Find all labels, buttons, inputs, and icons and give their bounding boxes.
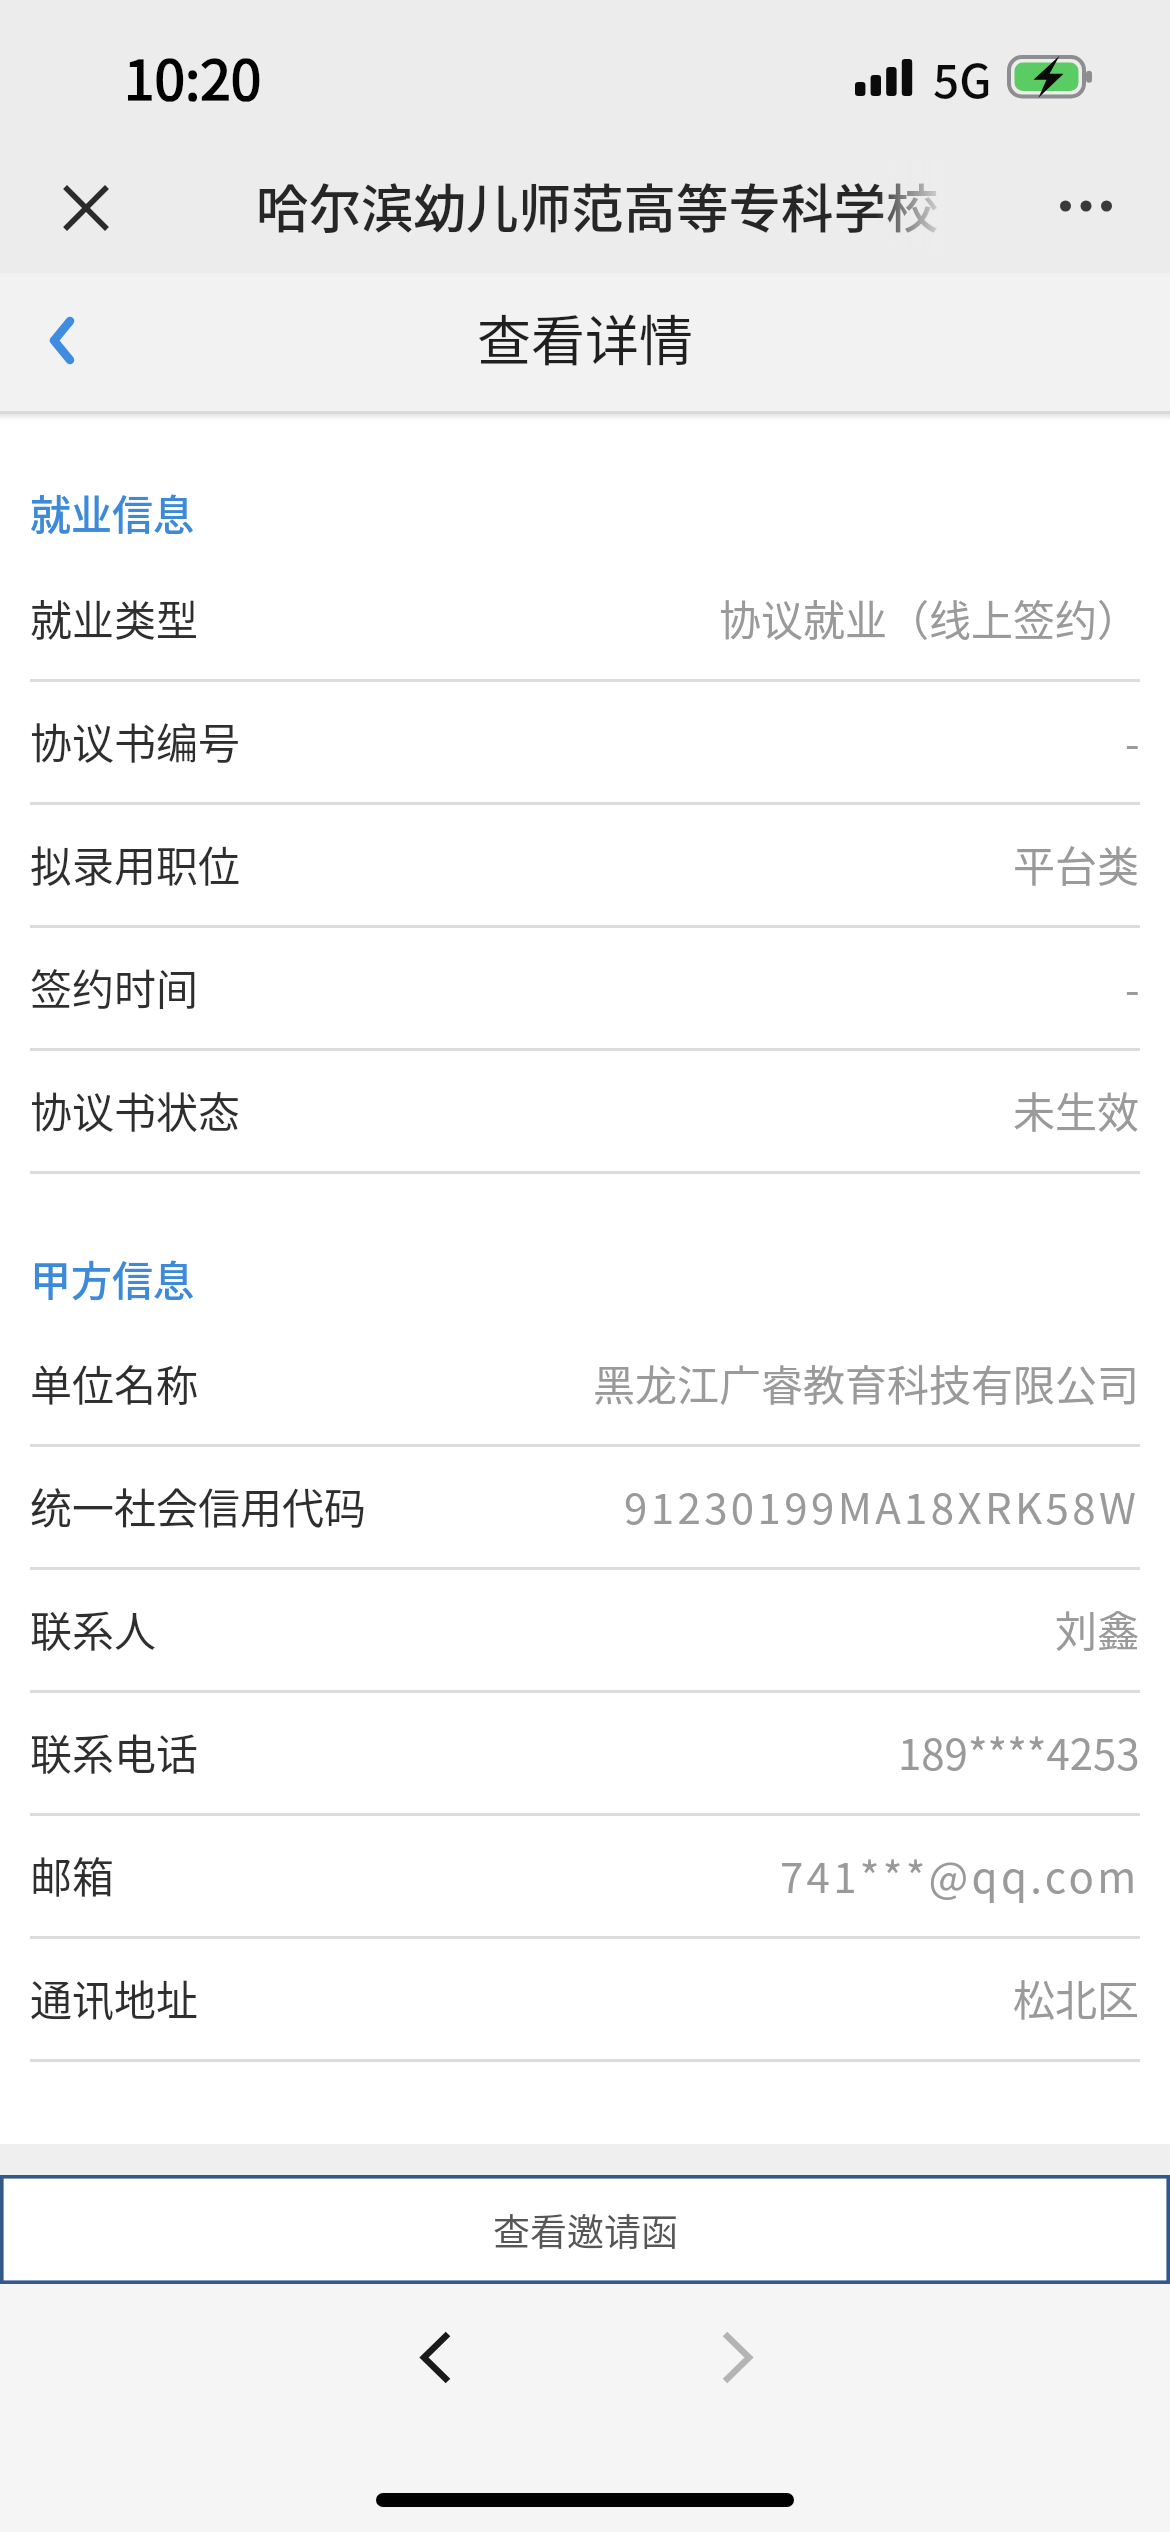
button[interactable]: More options bbox=[1040, 148, 1170, 264]
button[interactable]: 统一社会信用代码 bbox=[0, 1447, 1170, 1570]
staticText: 741***@qq.com bbox=[780, 1844, 1140, 1905]
staticText: 统一社会信用代码 bbox=[30, 1475, 367, 1536]
staticText: 邮箱 bbox=[30, 1844, 115, 1905]
staticText: - bbox=[1125, 710, 1140, 771]
button[interactable]: 联系人 bbox=[0, 1570, 1170, 1693]
staticText: 查看详情 bbox=[477, 298, 693, 376]
staticText: 松北区 bbox=[1013, 1967, 1140, 2028]
staticText: 签约时间 bbox=[30, 956, 199, 1017]
staticText: 甲方信息 bbox=[30, 1248, 194, 1307]
staticText: 协议书状态 bbox=[30, 1079, 241, 1140]
staticText: 通讯地址 bbox=[30, 1967, 199, 2028]
staticText: 就业信息 bbox=[30, 482, 194, 541]
staticText: 刘鑫 bbox=[1055, 1598, 1140, 1659]
staticText: 单位名称 bbox=[30, 1352, 199, 1413]
staticText: 拟录用职位 bbox=[30, 833, 241, 894]
button[interactable]: Forward bbox=[677, 2302, 797, 2412]
button[interactable]: 签约时间 bbox=[0, 928, 1170, 1051]
button[interactable]: 查看邀请函 bbox=[0, 2175, 1170, 2284]
staticText: - bbox=[1125, 956, 1140, 1017]
button[interactable]: 联系电话 bbox=[0, 1693, 1170, 1816]
staticText: 就业类型 bbox=[30, 587, 199, 648]
staticText: 查看邀请函 bbox=[493, 2203, 678, 2257]
button[interactable]: 协议书状态 bbox=[0, 1051, 1170, 1174]
staticText: 联系电话 bbox=[30, 1721, 199, 1782]
staticText: 协议书编号 bbox=[30, 710, 241, 771]
button[interactable]: 就业类型 bbox=[0, 559, 1170, 682]
staticText: 91230199MA18XRK58W bbox=[624, 1475, 1140, 1536]
staticText: 协议就业（线上签约） bbox=[719, 587, 1140, 648]
button[interactable]: Back bbox=[0, 273, 122, 411]
button[interactable]: 协议书编号 bbox=[0, 682, 1170, 805]
button[interactable]: 通讯地址 bbox=[0, 1939, 1170, 2062]
button[interactable]: Back bbox=[376, 2302, 496, 2412]
button[interactable]: 邮箱 bbox=[0, 1816, 1170, 1939]
button[interactable]: Close bbox=[20, 148, 150, 273]
staticText: 未生效 bbox=[1013, 1079, 1140, 1140]
staticText: 5G bbox=[933, 45, 992, 112]
button[interactable]: 单位名称 bbox=[0, 1324, 1170, 1447]
staticText: 平台类 bbox=[1013, 833, 1140, 894]
staticText: 189****4253 bbox=[898, 1721, 1140, 1782]
staticText: 黑龙江广睿教育科技有限公司 bbox=[593, 1352, 1140, 1413]
button[interactable]: 拟录用职位 bbox=[0, 805, 1170, 928]
staticText: 联系人 bbox=[30, 1598, 157, 1659]
staticText: 哈尔滨幼儿师范高等专科学校 bbox=[256, 167, 939, 243]
staticText: 10:20 bbox=[124, 36, 262, 116]
